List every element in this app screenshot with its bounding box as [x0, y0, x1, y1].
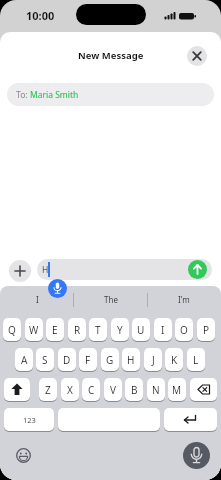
button[interactable]: I [0, 291, 74, 308]
button[interactable]: B [125, 378, 143, 402]
staticText: U [137, 323, 145, 337]
button[interactable]: L [187, 348, 205, 372]
staticText: To: [16, 89, 30, 101]
button[interactable] [183, 442, 210, 469]
button[interactable]: Z [39, 378, 57, 402]
button[interactable] [188, 260, 207, 279]
staticText: H [42, 264, 49, 276]
staticText: C [88, 383, 95, 397]
button[interactable]: G [101, 348, 119, 372]
button[interactable]: U [132, 318, 150, 342]
staticText: The [104, 294, 118, 305]
button[interactable]: R [68, 318, 86, 342]
button[interactable] [16, 448, 31, 463]
button[interactable]: T [89, 318, 107, 342]
staticText: V [110, 383, 116, 397]
staticText: Z [45, 383, 51, 397]
staticText: T [95, 323, 101, 337]
staticText: H [127, 353, 135, 367]
button[interactable] [9, 260, 31, 282]
button[interactable]: D [58, 348, 76, 372]
staticText: A [21, 353, 28, 367]
staticText: Maria Smith [30, 89, 79, 101]
staticText: D [63, 353, 71, 367]
button[interactable]: C [82, 378, 100, 402]
button[interactable]: H [122, 348, 140, 372]
button[interactable] [187, 46, 207, 66]
button[interactable]: S [36, 348, 54, 372]
staticText: G [106, 353, 114, 367]
staticText: Q [8, 323, 16, 337]
button[interactable]: 123 [4, 408, 54, 432]
staticText: I'm [178, 294, 190, 305]
button[interactable]: Q [3, 318, 21, 342]
button[interactable]: H [37, 259, 212, 280]
staticText: F [85, 353, 91, 367]
staticText: Y [117, 323, 123, 337]
button[interactable]: Y [111, 318, 129, 342]
button[interactable]: P [197, 318, 215, 342]
button[interactable]: N [147, 378, 165, 402]
button[interactable]: F [79, 348, 97, 372]
staticText: L [193, 353, 199, 367]
button[interactable] [4, 378, 30, 402]
staticText: W [29, 323, 39, 337]
button[interactable]: W [25, 318, 43, 342]
button[interactable]: I [154, 318, 172, 342]
staticText: R [74, 323, 81, 337]
staticText: K [171, 353, 178, 367]
staticText: X [67, 383, 73, 397]
button[interactable]: V [104, 378, 122, 402]
button[interactable]: M [168, 378, 186, 402]
staticText: I [36, 294, 39, 305]
staticText: P [203, 323, 210, 337]
staticText: B [131, 383, 138, 397]
button[interactable]: J [144, 348, 162, 372]
button[interactable] [58, 408, 160, 432]
staticText: J [152, 353, 155, 367]
staticText: I [161, 323, 165, 337]
staticText: 10:00 [26, 8, 55, 23]
staticText: S [42, 353, 48, 367]
button[interactable]: To: [7, 83, 214, 106]
button[interactable]: The [74, 291, 148, 308]
button[interactable]: I'm [147, 291, 221, 308]
button[interactable] [48, 279, 67, 298]
button[interactable]: X [61, 378, 79, 402]
button[interactable] [164, 408, 217, 432]
button[interactable]: K [165, 348, 183, 372]
staticText: O [180, 323, 188, 337]
button[interactable]: E [46, 318, 64, 342]
staticText: N [152, 383, 160, 397]
button[interactable]: A [15, 348, 33, 372]
staticText: M [172, 383, 182, 397]
staticText: E [52, 323, 58, 337]
staticText: 123 [23, 415, 36, 425]
staticText: New Message [78, 49, 144, 62]
button[interactable] [190, 378, 217, 402]
button[interactable]: O [175, 318, 193, 342]
